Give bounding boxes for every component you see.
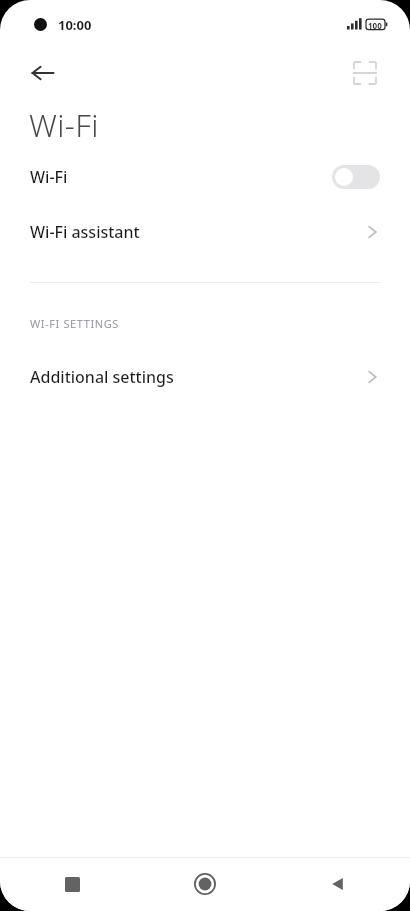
staticText: WI-FI SETTINGS <box>30 316 119 331</box>
button[interactable]: Recent apps <box>48 860 96 908</box>
staticText: Wi-Fi assistant <box>30 221 140 243</box>
button[interactable]: Wi-Fi assistant <box>0 208 410 256</box>
button[interactable]: Scan QR code <box>342 50 388 96</box>
button[interactable]: Back <box>20 50 66 96</box>
button[interactable]: Wi-Fi <box>0 146 410 208</box>
staticText: Wi-Fi <box>30 166 68 188</box>
staticText: 100 <box>368 20 382 31</box>
button[interactable]: Back <box>314 860 362 908</box>
staticText: Additional settings <box>30 366 174 388</box>
staticText: Wi-Fi <box>29 104 99 146</box>
button[interactable]: Home <box>181 860 229 908</box>
button[interactable]: Additional settings <box>0 353 410 401</box>
staticText: 10:00 <box>58 16 92 34</box>
